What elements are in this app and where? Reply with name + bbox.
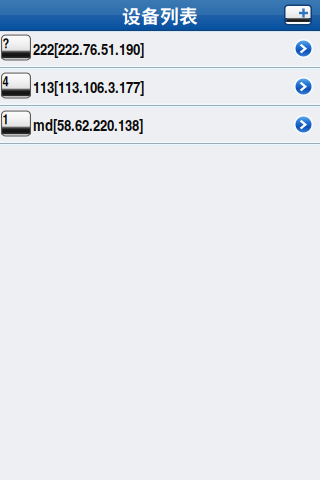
staticText: 设备列表	[122, 1, 198, 28]
button[interactable]: 1	[0, 108, 320, 146]
button[interactable]: Add device	[284, 4, 312, 25]
staticText: 1	[2, 109, 8, 128]
button[interactable]: ?	[0, 32, 320, 70]
staticText: 4	[2, 71, 8, 90]
staticText: md[58.62.220.138]	[33, 113, 143, 136]
button[interactable]: 4	[0, 70, 320, 108]
staticText: 113[113.106.3.177]	[33, 75, 144, 98]
staticText: ?	[2, 33, 9, 52]
staticText: 222[222.76.51.190]	[33, 37, 144, 60]
